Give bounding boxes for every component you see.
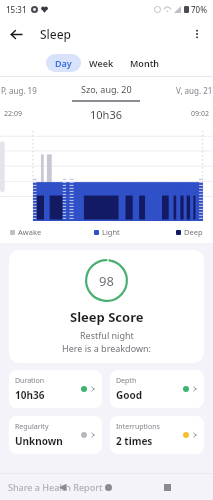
staticText: Restful night: [80, 329, 134, 341]
button[interactable]: Week: [81, 54, 122, 72]
button[interactable]: Back: [0, 18, 32, 50]
button[interactable]: Day: [46, 54, 81, 72]
staticText: 22:09: [4, 109, 22, 119]
staticText: 70%: [191, 4, 207, 15]
staticText: Light: [102, 227, 120, 237]
staticText: Szo, aug. 20: [81, 83, 132, 95]
staticText: Here is a breakdown:: [62, 342, 151, 354]
staticText: Good: [116, 388, 143, 402]
staticText: Sleep: [40, 26, 72, 42]
button[interactable]: V, aug. 21: [147, 77, 213, 103]
button[interactable]: Month: [122, 54, 168, 72]
button[interactable]: P, aug. 19: [0, 77, 65, 103]
button[interactable]: Back: [54, 479, 70, 495]
staticText: Duration: [15, 376, 45, 386]
staticText: V, aug. 21: [176, 85, 213, 96]
button[interactable]: Szo, aug. 20: [65, 77, 147, 103]
staticText: Sleep Score: [70, 308, 144, 326]
staticText: 2 times: [116, 434, 153, 448]
staticText: Month: [130, 57, 160, 69]
staticText: P, aug. 19: [1, 85, 37, 96]
staticText: 15:31: [6, 4, 27, 15]
button[interactable]: Share a Health Report: [0, 474, 213, 500]
staticText: 98: [99, 272, 114, 290]
staticText: Regularity: [15, 422, 49, 432]
staticText: Week: [89, 57, 114, 69]
staticText: Depth: [116, 376, 137, 386]
staticText: Share a Health Report: [8, 481, 103, 493]
button[interactable]: Home: [100, 479, 116, 495]
staticText: 10h36: [15, 388, 45, 402]
button[interactable]: 98: [9, 250, 204, 363]
staticText: Day: [55, 57, 72, 69]
staticText: Unknown: [15, 434, 63, 448]
button[interactable]: Regularity: [9, 416, 102, 454]
button[interactable]: Depth: [110, 370, 204, 408]
button[interactable]: Duration: [9, 370, 102, 408]
button[interactable]: More options: [181, 18, 213, 50]
staticText: Interruptions: [116, 422, 160, 432]
button[interactable]: Interruptions: [110, 416, 204, 454]
staticText: 09:02: [191, 109, 209, 119]
staticText: 10h36: [90, 107, 122, 122]
staticText: Deep: [184, 227, 203, 237]
button[interactable]: Recent apps: [159, 479, 175, 495]
staticText: Awake: [18, 227, 42, 237]
